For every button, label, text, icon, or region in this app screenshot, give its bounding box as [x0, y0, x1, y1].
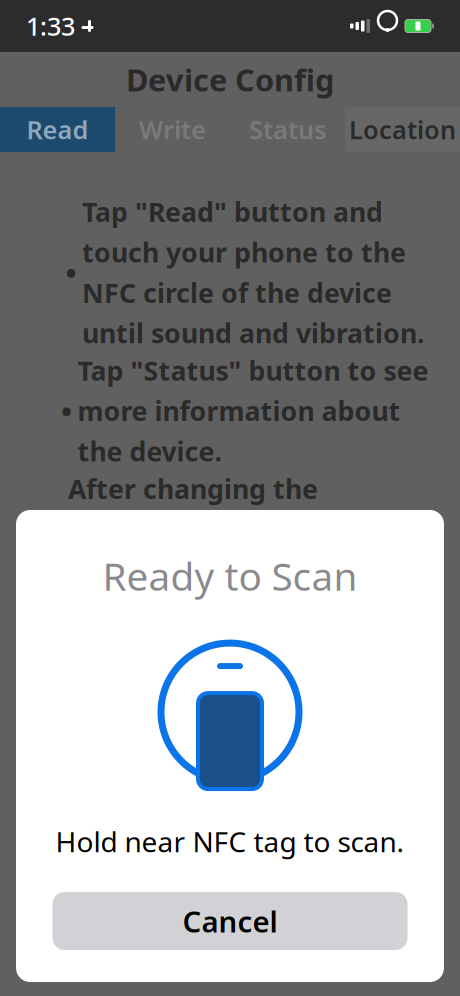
- button[interactable]: Status: [230, 107, 345, 152]
- staticText: Tap "Location" button to find out your c…: [84, 751, 421, 867]
- staticText: •: [65, 253, 76, 292]
- staticText: 1:33: [26, 9, 75, 43]
- staticText: Device Config: [126, 59, 334, 100]
- button[interactable]: Location: [345, 107, 460, 152]
- staticText: Ready to Scan: [102, 550, 357, 601]
- staticText: Cancel: [182, 901, 277, 940]
- staticText: Read: [26, 113, 88, 146]
- staticText: Tap "Status" button to see more informat…: [77, 353, 428, 469]
- button[interactable]: Write: [115, 107, 230, 152]
- staticText: Tap "Read" button and touch your phone t…: [82, 194, 424, 351]
- staticText: After changing the settings, tap "Write"…: [68, 471, 438, 749]
- staticText: •: [61, 391, 72, 430]
- staticText: Hold near NFC tag to scan.: [55, 823, 404, 860]
- staticText: Status: [249, 113, 326, 146]
- button[interactable]: Cancel: [52, 892, 407, 950]
- staticText: Location: [349, 113, 456, 146]
- button[interactable]: Read: [0, 107, 115, 152]
- staticText: Write: [139, 113, 206, 146]
